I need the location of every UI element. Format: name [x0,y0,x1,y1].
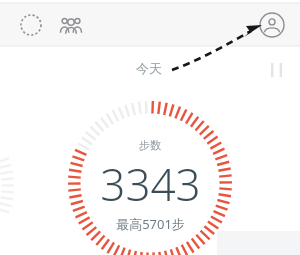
button[interactable]: Pause [264,58,288,82]
button[interactable]: Steps [0,0,300,255]
button[interactable]: Profile [256,9,288,41]
button[interactable]: 今天 [134,58,164,78]
staticText: 3343 [100,154,201,214]
staticText: 步数 [139,138,161,152]
button[interactable]: Friends [56,10,86,40]
staticText: 最高5701步 [116,215,185,233]
staticText: 今天 [136,60,162,76]
button[interactable]: Activity [16,10,46,40]
